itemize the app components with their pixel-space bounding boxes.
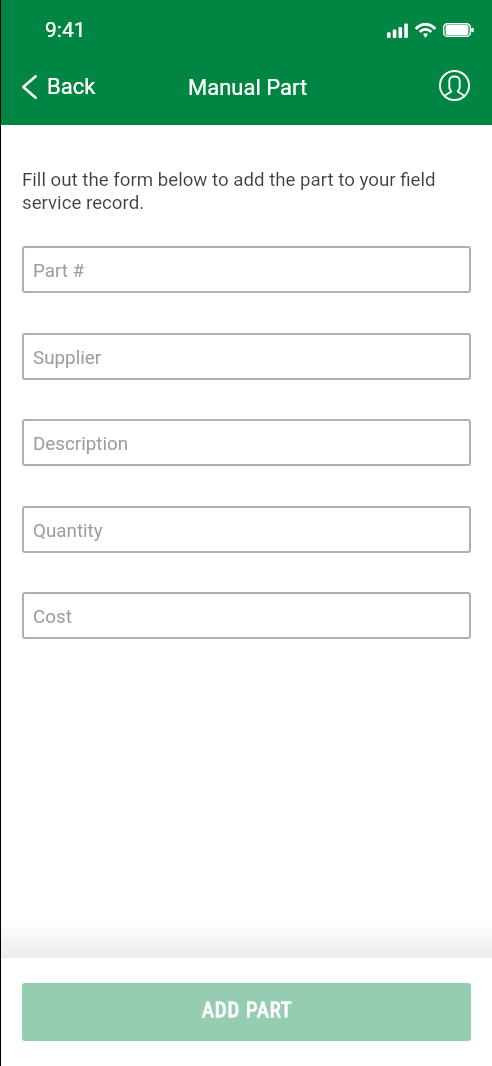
button[interactable]: ADD PART [22, 983, 471, 1041]
button[interactable]: Cost [22, 592, 471, 639]
staticText: Back [47, 74, 96, 100]
staticText: Manual Part [188, 75, 308, 101]
staticText: Quantity [33, 520, 103, 542]
button[interactable]: Description [22, 419, 471, 466]
button[interactable]: Part # [22, 246, 471, 293]
button[interactable]: Supplier [22, 333, 471, 380]
staticText: Supplier [33, 347, 102, 369]
button[interactable]: Quantity [22, 506, 471, 553]
staticText: Part # [33, 260, 85, 282]
staticText: ADD PART [202, 998, 293, 1022]
button[interactable]: Back [12, 64, 108, 110]
staticText: 9:41 [45, 18, 86, 43]
button[interactable]: Account [432, 63, 477, 108]
staticText: Description [33, 433, 129, 455]
staticText: Cost [33, 606, 72, 628]
staticText: Fill out the form below to add the part … [22, 169, 470, 214]
